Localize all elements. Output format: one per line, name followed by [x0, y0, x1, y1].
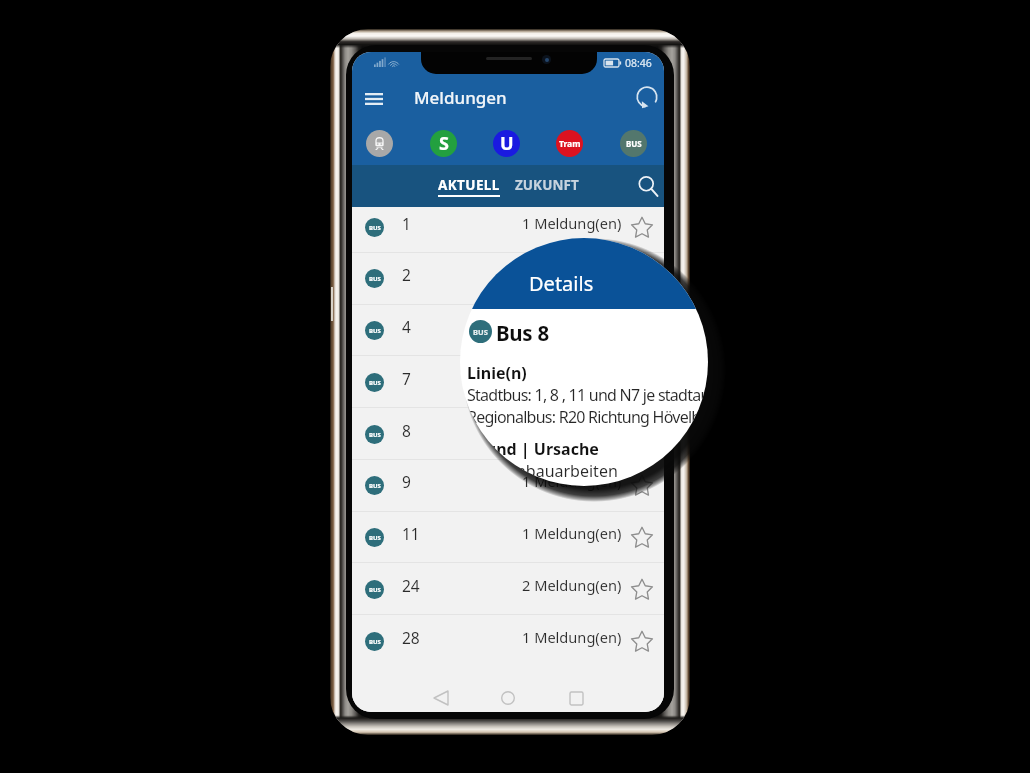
staticText: Linie(n) — [467, 362, 527, 384]
button[interactable]: BUS — [352, 252, 664, 304]
staticText: 8 — [402, 420, 411, 441]
button[interactable]: Home — [492, 682, 524, 712]
button[interactable]: Menu — [355, 81, 393, 119]
staticText: 24 — [402, 575, 420, 596]
staticText: Bus 8 — [496, 319, 549, 347]
staticText: 9 — [402, 471, 411, 492]
staticText: 08:46 — [625, 56, 652, 70]
staticText: 11 — [402, 523, 420, 544]
button[interactable]: BUS — [352, 304, 664, 356]
staticText: BUS — [369, 586, 381, 594]
staticText: Details — [529, 270, 594, 297]
staticText: BUS — [369, 327, 381, 335]
staticText: U — [500, 131, 514, 156]
staticText: BUS — [369, 482, 381, 490]
staticText: Grund | Ursache — [467, 438, 599, 460]
button[interactable]: BUS — [352, 408, 664, 460]
button[interactable]: Favorite — [629, 628, 655, 654]
staticText: 1 — [402, 213, 411, 234]
button[interactable]: BUS — [352, 356, 664, 408]
staticText: Regionalbus: R20 Richtung Hövelhof — [467, 406, 708, 428]
staticText: 4 — [402, 316, 411, 337]
staticText: BUS — [369, 275, 381, 283]
button[interactable]: BUS — [352, 563, 664, 615]
staticText: 28 — [402, 627, 420, 648]
button[interactable]: BUS — [352, 459, 664, 511]
staticText: 2 — [402, 264, 411, 285]
staticText: BUS — [626, 138, 642, 149]
staticText: 7 — [402, 368, 411, 389]
staticText: BUS — [369, 379, 381, 387]
button[interactable]: Search — [632, 170, 664, 202]
button[interactable]: AKTUELL — [434, 173, 504, 200]
button[interactable]: Favorite — [629, 472, 655, 498]
staticText: AKTUELL — [438, 176, 500, 194]
staticText: 1 Meldung(en) — [522, 627, 622, 647]
button[interactable]: S-Bahn — [430, 130, 457, 157]
button[interactable]: BUS — [352, 511, 664, 563]
staticText: Tram — [559, 138, 581, 150]
staticText: 2 Meldung(en) — [522, 575, 622, 595]
staticText: ZUKUNFT — [515, 176, 579, 194]
button[interactable]: Bus — [620, 130, 647, 157]
staticText: 1 Meldung(en) — [522, 420, 622, 440]
staticText: 1 Meldung(en) — [522, 264, 622, 284]
staticText: 1 Meldung(en) — [522, 471, 622, 491]
button[interactable]: Favorite — [629, 214, 655, 240]
button[interactable]: Favorite — [629, 576, 655, 602]
staticText: S — [439, 131, 449, 156]
staticText: Stadtbus: 1, 8 , 11 und N7 je stadtauswä… — [467, 384, 708, 406]
button[interactable]: ZUKUNFT — [511, 173, 583, 197]
button[interactable]: Favorite — [629, 524, 655, 550]
button[interactable]: BUS — [352, 615, 664, 667]
button[interactable]: BUS — [352, 201, 664, 253]
staticText: Straßenbauarbeiten — [467, 460, 618, 482]
button[interactable]: U-Bahn — [493, 130, 520, 157]
staticText: BUS — [369, 431, 381, 439]
button[interactable]: Back — [425, 682, 457, 712]
staticText: 1 Meldung(en) — [522, 316, 622, 336]
staticText: 1 Meldung(en) — [522, 213, 622, 233]
button[interactable]: Favorite — [629, 421, 655, 447]
staticText: BUS — [369, 638, 381, 646]
staticText: Meldungen — [414, 86, 507, 109]
button[interactable]: Tram — [556, 130, 583, 157]
button[interactable]: Recent apps — [560, 682, 592, 712]
button[interactable]: Train — [366, 130, 393, 157]
staticText: BUS — [473, 327, 488, 337]
staticText: BUS — [369, 534, 381, 542]
staticText: 1 Meldung(en) — [522, 523, 622, 543]
staticText: BUS — [369, 224, 381, 232]
button[interactable]: Refresh — [628, 78, 664, 116]
staticText: 1 Meldung(en) — [522, 368, 622, 388]
button[interactable]: Favorite — [629, 369, 655, 395]
